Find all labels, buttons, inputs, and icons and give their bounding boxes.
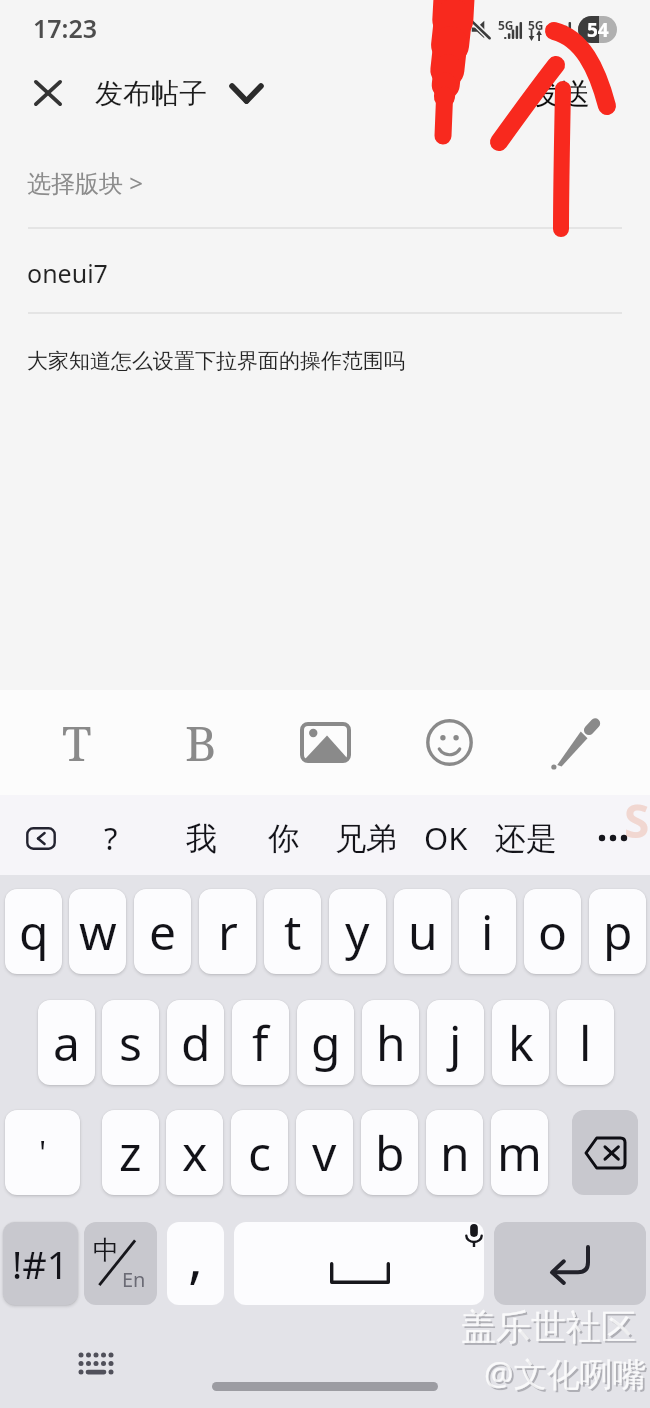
button[interactable]: s: [102, 1000, 159, 1085]
button[interactable]: o: [524, 889, 581, 974]
staticText: 54: [587, 17, 609, 43]
button[interactable]: u: [394, 889, 451, 974]
button[interactable]: c: [231, 1110, 288, 1195]
staticText: oneui7: [27, 256, 108, 290]
staticText: l: [579, 1010, 592, 1075]
staticText: u: [408, 899, 438, 964]
button[interactable]: 还是: [486, 805, 566, 871]
button[interactable]: p: [589, 889, 646, 974]
button[interactable]: l: [557, 1000, 614, 1085]
staticText: a: [53, 1010, 80, 1075]
staticText: 盖乐世社区: [463, 1307, 638, 1351]
button[interactable]: i: [459, 889, 516, 974]
staticText: 大家知道怎么设置下拉界面的操作范围吗: [27, 348, 405, 374]
staticText: !#1: [12, 1238, 69, 1290]
staticText: e: [149, 899, 177, 964]
button[interactable]: Switch input language: [84, 1222, 157, 1305]
button[interactable]: Text style: [25, 690, 129, 795]
button[interactable]: n: [426, 1110, 483, 1195]
staticText: 5G: [528, 17, 544, 33]
button[interactable]: g: [297, 1000, 354, 1085]
button[interactable]: t: [264, 889, 321, 974]
button[interactable]: Bold: [149, 690, 253, 795]
button[interactable]: ,: [167, 1222, 224, 1305]
button[interactable]: 兄弟: [326, 805, 406, 871]
button[interactable]: j: [427, 1000, 484, 1085]
staticText: v: [312, 1120, 337, 1185]
button[interactable]: z: [102, 1110, 159, 1195]
staticText: OK: [424, 817, 468, 859]
button[interactable]: d: [167, 1000, 224, 1085]
staticText: f: [252, 1010, 269, 1075]
button[interactable]: Hide keyboard: [70, 1342, 122, 1386]
staticText: 盖乐世社区: [461, 1305, 636, 1349]
staticText: k: [508, 1010, 534, 1075]
button[interactable]: 发布帖子: [95, 62, 264, 124]
button[interactable]: ': [5, 1110, 80, 1195]
staticText: c: [248, 1120, 272, 1185]
button[interactable]: 你: [243, 805, 323, 871]
button[interactable]: f: [232, 1000, 289, 1085]
button[interactable]: OK: [406, 805, 486, 871]
button[interactable]: k: [492, 1000, 549, 1085]
staticText: 兄弟: [335, 819, 397, 858]
staticText: En: [122, 1266, 146, 1293]
staticText: b: [375, 1120, 405, 1185]
staticText: r: [218, 899, 238, 964]
button[interactable]: Enter: [494, 1222, 646, 1305]
staticText: @文化咧嘴: [486, 1353, 648, 1398]
staticText: t: [284, 899, 302, 964]
staticText: o: [538, 899, 568, 964]
button[interactable]: Close: [20, 67, 76, 119]
button[interactable]: a: [38, 1000, 95, 1085]
button[interactable]: Back: [12, 808, 70, 868]
staticText: 中: [93, 1234, 119, 1267]
button[interactable]: r: [199, 889, 256, 974]
staticText: g: [311, 1010, 341, 1075]
button[interactable]: w: [69, 889, 126, 974]
button[interactable]: 选择版块 >: [0, 152, 650, 220]
button[interactable]: q: [5, 889, 62, 974]
staticText: x: [182, 1120, 208, 1185]
staticText: 17:23: [33, 11, 98, 45]
staticText: j: [449, 1010, 462, 1075]
staticText: 你: [268, 819, 299, 858]
staticText: n: [440, 1120, 470, 1185]
staticText: ?: [104, 817, 118, 859]
button[interactable]: v: [296, 1110, 353, 1195]
staticText: m: [497, 1120, 542, 1185]
staticText: ,: [188, 1222, 204, 1294]
staticText: 选择版块 >: [27, 166, 143, 199]
staticText: z: [119, 1120, 142, 1185]
button[interactable]: Backspace: [572, 1110, 638, 1195]
button[interactable]: y: [329, 889, 386, 974]
button[interactable]: Space: [234, 1222, 484, 1305]
staticText: 发送: [530, 75, 590, 113]
button[interactable]: m: [491, 1110, 548, 1195]
button[interactable]: More: [582, 808, 638, 868]
button[interactable]: !#1: [3, 1222, 78, 1305]
staticText: p: [603, 899, 633, 964]
staticText: w: [79, 899, 117, 964]
button[interactable]: ?: [71, 805, 151, 871]
staticText: 发布帖子: [95, 76, 207, 111]
button[interactable]: x: [166, 1110, 223, 1195]
staticText: B: [185, 710, 217, 775]
button[interactable]: b: [361, 1110, 418, 1195]
button[interactable]: e: [134, 889, 191, 974]
staticText: S: [624, 789, 650, 852]
button[interactable]: h: [362, 1000, 419, 1085]
button[interactable]: Draw: [523, 690, 627, 795]
staticText: T: [62, 710, 92, 775]
staticText: s: [119, 1010, 142, 1075]
button[interactable]: 我: [161, 805, 241, 871]
staticText: y: [345, 899, 370, 964]
staticText: d: [181, 1010, 211, 1075]
button[interactable]: Insert image: [273, 690, 377, 795]
button[interactable]: Emoji: [397, 690, 501, 795]
staticText: 5G: [498, 17, 514, 33]
staticText: h: [376, 1010, 406, 1075]
button[interactable]: 发送: [505, 62, 615, 126]
staticText: @文化咧嘴: [484, 1351, 646, 1396]
staticText: i: [481, 899, 494, 964]
